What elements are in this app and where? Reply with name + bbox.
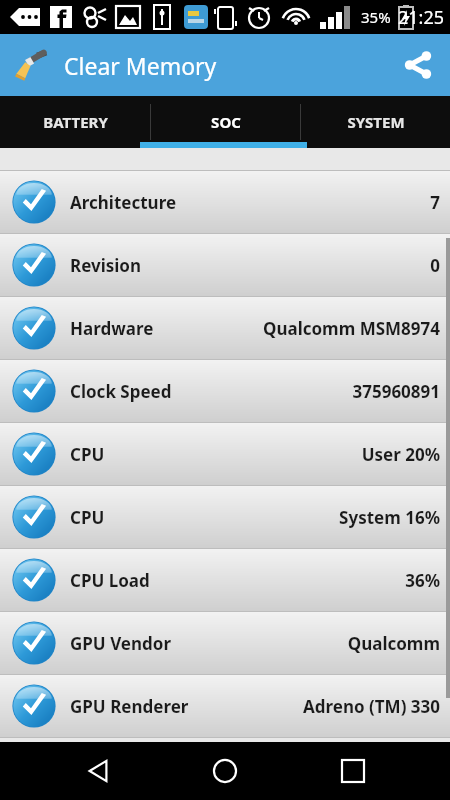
button[interactable]: BATTERY — [0, 96, 150, 148]
staticText: Architecture — [70, 191, 177, 214]
staticText: CPU — [70, 506, 105, 529]
button[interactable]: Recent apps — [323, 742, 383, 800]
staticText: Hardware — [70, 317, 154, 340]
button[interactable]: CPU — [0, 423, 450, 485]
staticText: 36% — [405, 569, 440, 592]
button[interactable]: Architecture — [0, 171, 450, 233]
button[interactable]: SYSTEM — [301, 96, 450, 148]
staticText: SOC — [211, 112, 241, 132]
staticText: Qualcomm — [347, 632, 440, 655]
button[interactable]: GPU Vendor — [0, 612, 450, 674]
staticText: Revision — [70, 254, 142, 277]
staticText: 375960891 — [352, 380, 440, 403]
button[interactable]: Home — [195, 742, 255, 800]
button[interactable]: GPU Renderer — [0, 675, 450, 737]
button[interactable]: CPU — [0, 486, 450, 548]
staticText: Qualcomm MSM8974 — [262, 317, 440, 340]
button[interactable]: Clock Speed — [0, 360, 450, 422]
button[interactable]: CPU Load — [0, 549, 450, 611]
staticText: Adreno (TM) 330 — [303, 695, 440, 718]
button[interactable]: SOC — [151, 96, 300, 148]
button[interactable]: Share — [394, 41, 442, 89]
staticText: GPU Renderer — [70, 695, 189, 718]
staticText: User 20% — [361, 443, 440, 466]
staticText: Clear Memory — [64, 50, 217, 81]
staticText: 0 — [430, 254, 440, 277]
button[interactable]: Revision — [0, 234, 450, 296]
staticText: System 16% — [339, 506, 440, 529]
staticText: 35% — [361, 7, 391, 27]
staticText: GPU Vendor — [70, 632, 172, 655]
staticText: CPU — [70, 443, 105, 466]
staticText: BATTERY — [43, 112, 108, 132]
staticText: 21:25 — [398, 5, 445, 30]
button[interactable]: Back — [68, 742, 128, 800]
staticText: CPU Load — [70, 569, 150, 592]
button[interactable]: Hardware — [0, 297, 450, 359]
staticText: Clock Speed — [70, 380, 172, 403]
staticText: SYSTEM — [347, 112, 405, 132]
staticText: 7 — [430, 191, 440, 214]
